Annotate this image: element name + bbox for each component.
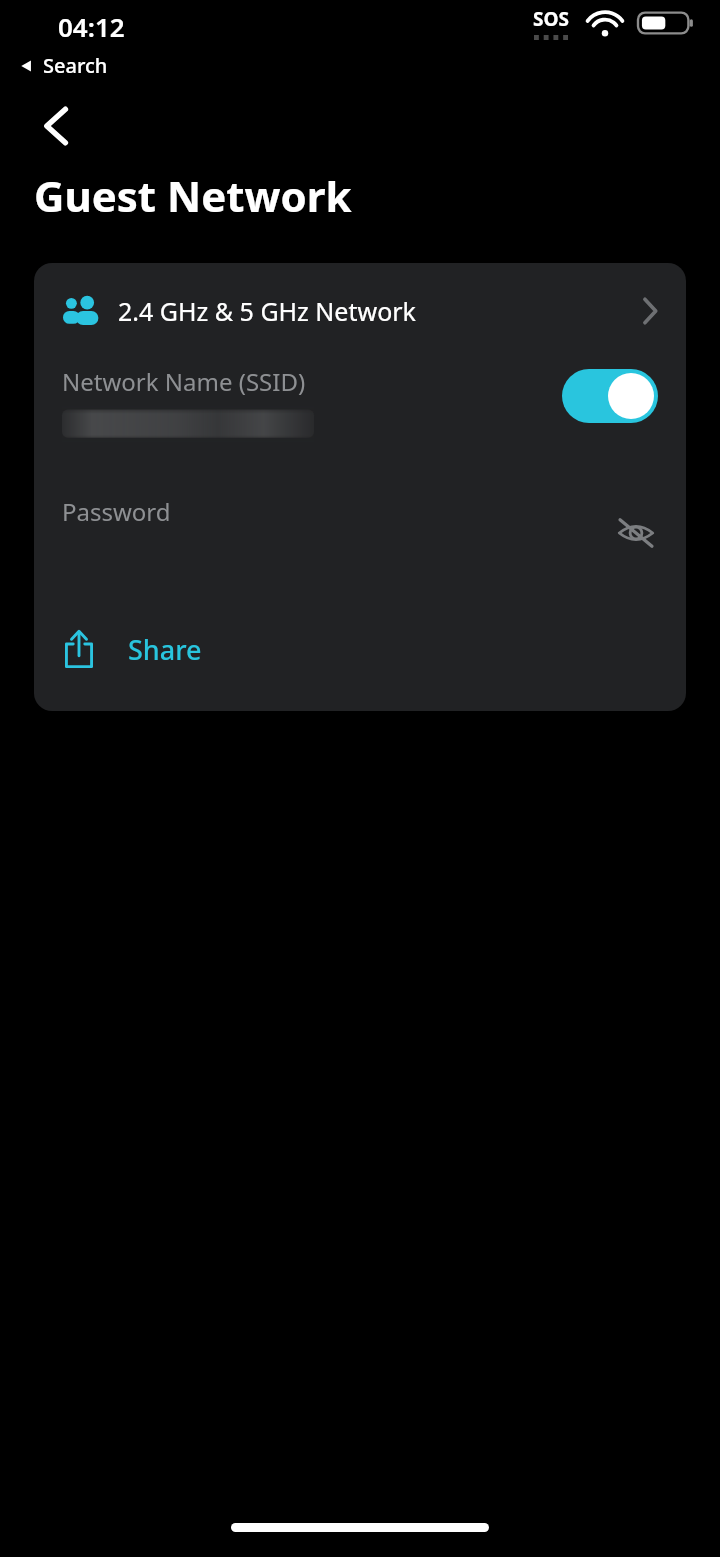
staticText: Password	[62, 495, 171, 528]
button[interactable]: 2.4 GHz & 5 GHz Network	[34, 263, 686, 359]
button[interactable]: Search	[18, 52, 108, 79]
button[interactable]: Back	[28, 97, 86, 155]
staticText: Network Name (SSID)	[62, 365, 306, 398]
button[interactable]: Show password	[608, 505, 664, 561]
staticText: 04:12	[58, 9, 125, 44]
button[interactable]: Guest network toggle, on	[562, 369, 658, 423]
staticText: SOS	[533, 6, 569, 32]
staticText: Guest Network	[34, 167, 352, 224]
button[interactable]: Share	[34, 613, 686, 685]
staticText: 2.4 GHz & 5 GHz Network	[118, 294, 642, 328]
staticText: Search	[43, 52, 108, 79]
staticText: Share	[128, 631, 202, 668]
